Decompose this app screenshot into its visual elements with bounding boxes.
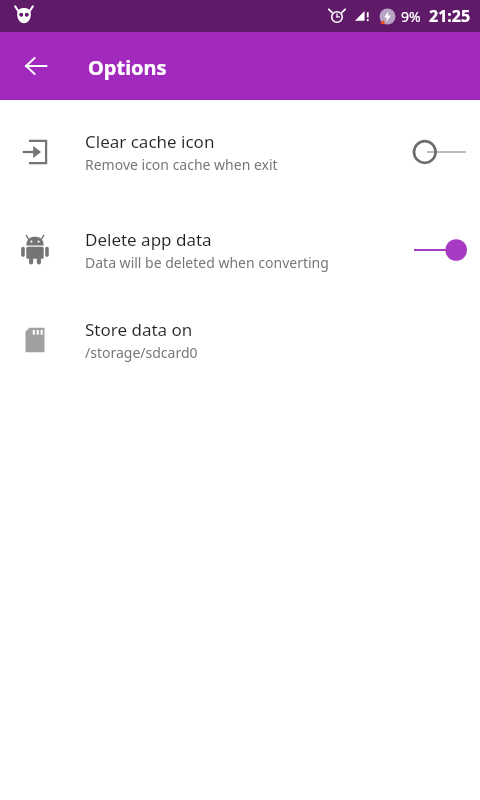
staticText: /storage/sdcard0 <box>85 343 198 362</box>
button[interactable]: Toggle off <box>412 134 468 170</box>
staticText: Delete app data <box>85 228 212 251</box>
staticText: 9% <box>401 7 421 26</box>
staticText: Data will be deleted when converting <box>85 253 329 272</box>
staticText: 21:25 <box>429 5 471 27</box>
staticText: Store data on <box>85 318 193 341</box>
button[interactable]: Toggle on <box>412 232 468 268</box>
button[interactable]: Delete app data <box>0 216 480 284</box>
button[interactable]: Store data on <box>0 306 480 374</box>
staticText: Clear cache icon <box>85 130 215 153</box>
button[interactable]: Clear cache icon <box>0 118 480 186</box>
button[interactable]: Back <box>12 42 60 90</box>
staticText: Remove icon cache when exit <box>85 155 278 174</box>
staticText: Options <box>88 54 167 81</box>
